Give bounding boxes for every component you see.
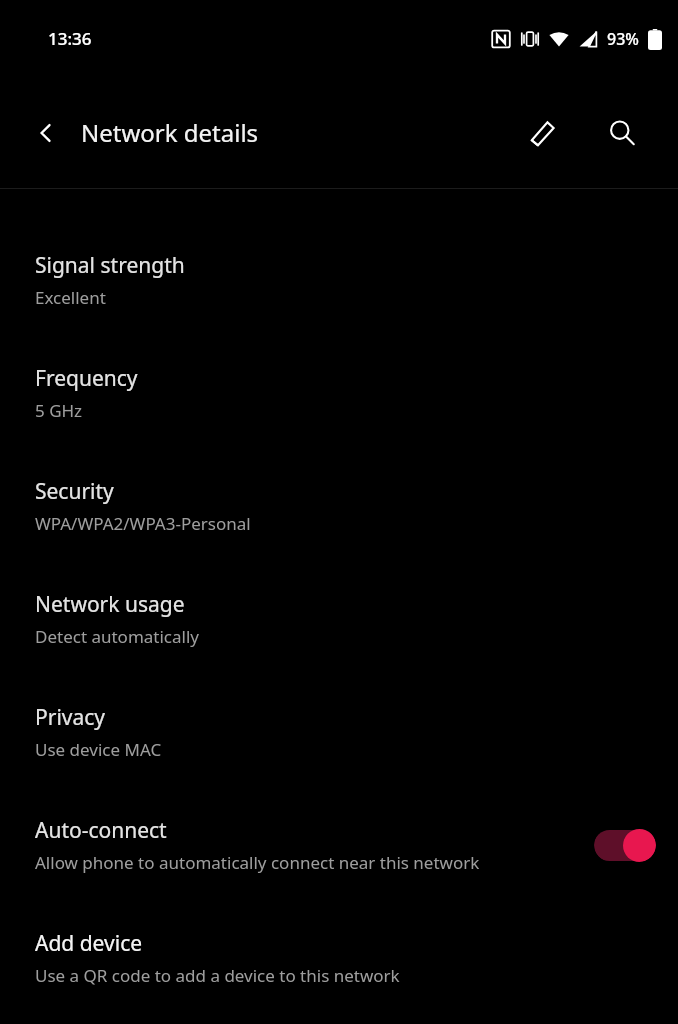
staticText: Add device [35,929,143,958]
staticText: Detect automatically [35,625,199,648]
button[interactable]: Network usage [0,562,678,675]
staticText: Network usage [35,590,185,619]
staticText: Excellent [35,286,106,309]
staticText: 93% [607,28,639,50]
staticText: Frequency [35,364,138,393]
button[interactable]: Back [22,109,70,157]
button[interactable]: Edit [517,107,569,159]
staticText: WPA/WPA2/WPA3-Personal [35,512,251,535]
staticText: 5 GHz [35,399,83,422]
staticText: Use a QR code to add a device to this ne… [35,964,400,987]
button[interactable]: Frequency [0,336,678,449]
staticText: Privacy [35,703,106,732]
staticText: Security [35,477,114,506]
button[interactable]: Signal strength [0,223,678,336]
button[interactable]: Privacy [0,675,678,788]
button[interactable]: Search [596,107,648,159]
staticText: Network details [81,116,259,149]
staticText: Allow phone to automatically connect nea… [35,851,480,874]
staticText: Use device MAC [35,738,162,761]
button[interactable]: Auto-connect [0,788,678,901]
button[interactable]: Security [0,449,678,562]
staticText: Signal strength [35,251,185,280]
staticText: 13:36 [48,27,92,50]
button[interactable]: Auto-connect toggle [594,828,656,862]
staticText: Auto-connect [35,816,167,845]
button[interactable]: Add device [0,901,678,1014]
